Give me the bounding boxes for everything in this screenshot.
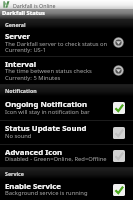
staticText: Ongoing Notification xyxy=(5,99,88,110)
button[interactable]: Interval xyxy=(0,57,133,84)
staticText: Darkfall is Online xyxy=(13,2,56,9)
staticText: Currently: US-1 xyxy=(5,46,46,54)
button[interactable]: Disabled checkbox xyxy=(112,149,126,163)
button[interactable]: Enabled checkbox xyxy=(112,183,126,197)
button[interactable]: Enable Service xyxy=(0,179,133,200)
button[interactable]: Disabled checkbox xyxy=(112,126,126,140)
staticText: Notification xyxy=(5,87,37,94)
staticText: General xyxy=(5,21,26,28)
staticText: Icon will stay in notification bar xyxy=(5,108,90,116)
staticText: Darkfall Status xyxy=(2,9,45,17)
staticText: Currently: 5 Minutes xyxy=(5,74,61,82)
staticText: Enable Service xyxy=(5,181,61,192)
button[interactable]: Choose value xyxy=(112,36,126,50)
button[interactable]: Status Update Sound xyxy=(0,121,133,144)
staticText: Interval xyxy=(5,59,37,70)
staticText: Background service is running xyxy=(5,189,88,197)
staticText: Service xyxy=(5,170,24,177)
staticText: The time between status checks xyxy=(5,67,92,75)
staticText: Status Update Sound xyxy=(5,123,87,134)
staticText: The Darkfall server to check status on xyxy=(5,40,108,48)
staticText: Disabled - Green=Online, Red=Offline xyxy=(5,155,107,163)
button[interactable]: Ongoing Notification xyxy=(0,96,133,120)
button[interactable]: Choose value xyxy=(112,64,126,78)
button[interactable]: Server xyxy=(0,29,133,56)
button[interactable]: Enabled checkbox xyxy=(112,101,126,115)
staticText: Advanced Icon xyxy=(5,147,63,158)
staticText: Server xyxy=(5,31,31,42)
button[interactable]: Advanced Icon xyxy=(0,145,133,167)
staticText: No sound xyxy=(5,132,32,140)
